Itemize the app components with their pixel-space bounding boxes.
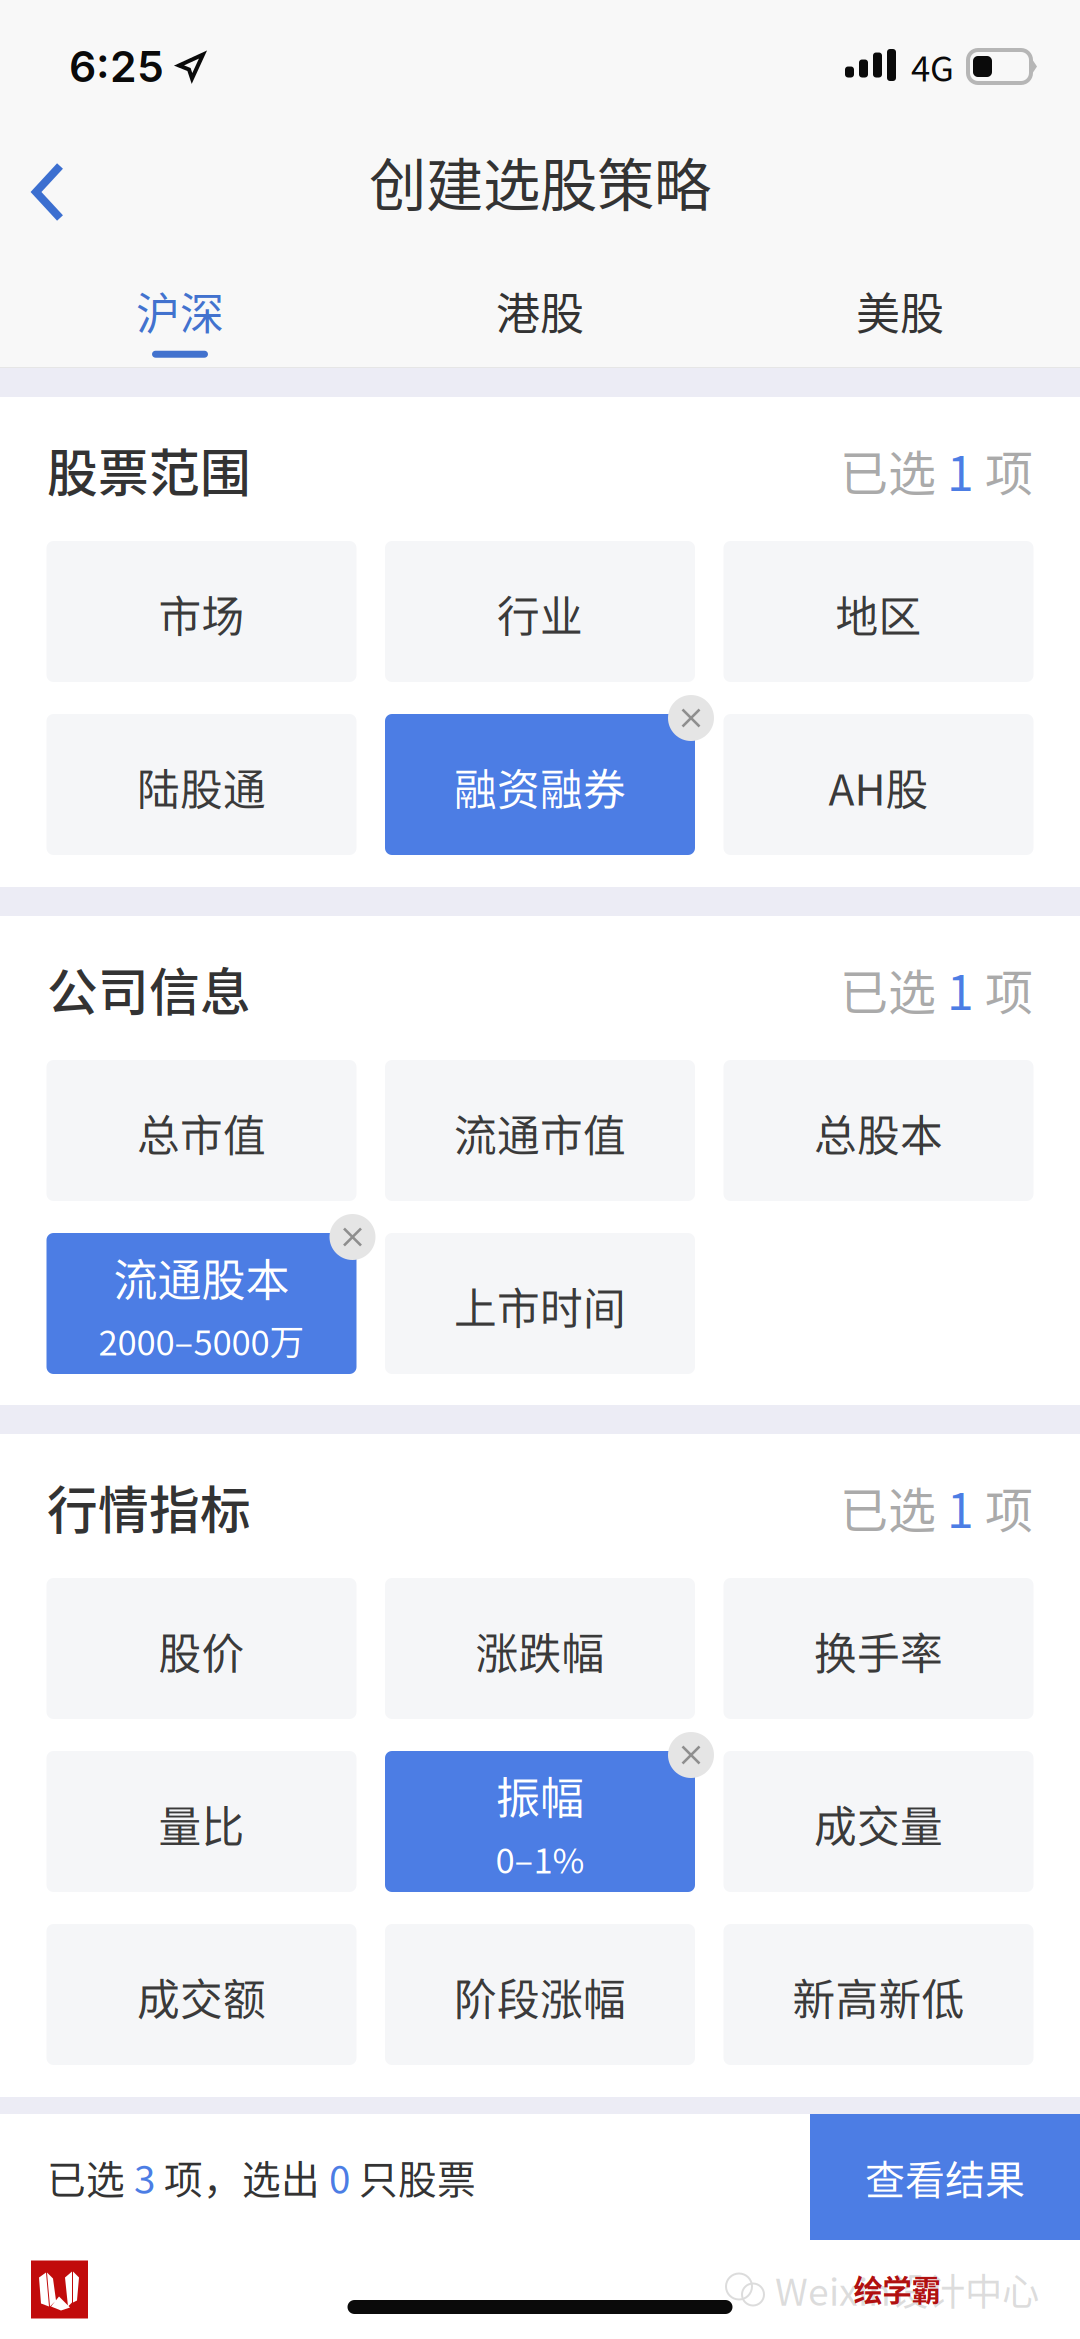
- staticText: 流通股本: [113, 1245, 289, 1309]
- staticText: 融资融券: [454, 756, 626, 818]
- staticText: 港股: [496, 279, 584, 343]
- staticText: 1: [947, 1472, 974, 1542]
- button[interactable]: 总股本: [723, 1060, 1033, 1201]
- button[interactable]: 融资融券: [385, 714, 695, 855]
- button[interactable]: 新高新低: [723, 1924, 1033, 2065]
- staticText: 换手率: [814, 1620, 943, 1682]
- button[interactable]: 上市时间: [385, 1233, 695, 1374]
- button[interactable]: 涨跌幅: [385, 1578, 695, 1719]
- staticText: 股票范围: [47, 433, 251, 507]
- staticText: 行业: [497, 583, 583, 645]
- button[interactable]: AH股: [723, 714, 1033, 855]
- staticText: 已选: [47, 2149, 134, 2205]
- staticText: 成交量: [814, 1793, 943, 1855]
- staticText: 项: [974, 954, 1033, 1024]
- staticText: 4G: [911, 41, 954, 92]
- staticText: 项: [974, 1472, 1033, 1542]
- button[interactable]: Remove 融资融券: [668, 695, 714, 741]
- staticText: 1: [947, 954, 974, 1024]
- staticText: 0: [329, 2149, 350, 2205]
- staticText: 成交额: [137, 1966, 266, 2028]
- staticText: 已选: [840, 435, 947, 505]
- button[interactable]: 陆股通: [46, 714, 356, 855]
- button[interactable]: 流通股本: [46, 1233, 356, 1374]
- staticText: 3: [134, 2149, 155, 2205]
- button[interactable]: 沪深: [0, 248, 360, 368]
- staticText: 已选: [840, 1472, 947, 1542]
- staticText: 量比: [158, 1793, 244, 1855]
- button[interactable]: 量比: [46, 1751, 356, 1892]
- staticText: 创建选股策略: [369, 139, 711, 222]
- button[interactable]: 流通市值: [385, 1060, 695, 1201]
- staticText: 总市值: [137, 1102, 266, 1164]
- staticText: 股价: [158, 1620, 244, 1682]
- staticText: 1: [947, 435, 974, 505]
- button[interactable]: 阶段涨幅: [385, 1924, 695, 2065]
- button[interactable]: Back: [0, 120, 96, 248]
- button[interactable]: 美股: [720, 248, 1080, 368]
- button[interactable]: 成交额: [46, 1924, 356, 2065]
- staticText: 公司信息: [47, 952, 251, 1026]
- button[interactable]: 成交量: [723, 1751, 1033, 1892]
- button[interactable]: 总市值: [46, 1060, 356, 1201]
- staticText: AH股: [828, 756, 928, 818]
- button[interactable]: 查看结果: [810, 2114, 1080, 2240]
- staticText: 涨跌幅: [475, 1620, 604, 1682]
- button[interactable]: 振幅: [385, 1751, 695, 1892]
- staticText: 项: [974, 435, 1033, 505]
- button[interactable]: 换手率: [723, 1578, 1033, 1719]
- staticText: 地区: [835, 583, 921, 645]
- staticText: 上市时间: [454, 1275, 626, 1337]
- staticText: 陆股通: [137, 756, 266, 818]
- staticText: 2000–5000万: [98, 1315, 304, 1365]
- staticText: 已选: [840, 954, 947, 1024]
- staticText: 项，选出: [155, 2149, 329, 2205]
- staticText: 绘学霸: [853, 2267, 940, 2310]
- staticText: 行情指标: [47, 1470, 251, 1544]
- button[interactable]: 地区: [723, 541, 1033, 682]
- button[interactable]: 行业: [385, 541, 695, 682]
- button[interactable]: Remove 流通股本: [329, 1214, 375, 1260]
- staticText: 新高新低: [792, 1966, 964, 2028]
- staticText: 只股票: [350, 2149, 476, 2205]
- staticText: 流通市值: [454, 1102, 626, 1164]
- staticText: 总股本: [814, 1102, 943, 1164]
- staticText: Weixin设计中心: [775, 2262, 1039, 2317]
- button[interactable]: 股价: [46, 1578, 356, 1719]
- button[interactable]: 港股: [360, 248, 720, 368]
- staticText: 振幅: [496, 1763, 584, 1827]
- staticText: 查看结果: [865, 2148, 1025, 2206]
- button[interactable]: Remove 振幅: [668, 1732, 714, 1778]
- staticText: 阶段涨幅: [454, 1966, 626, 2028]
- staticText: 沪深: [136, 279, 224, 343]
- staticText: 0–1%: [495, 1833, 584, 1883]
- staticText: 6:25: [69, 41, 164, 92]
- staticText: 美股: [856, 279, 944, 343]
- button[interactable]: 市场: [46, 541, 356, 682]
- staticText: 市场: [158, 583, 244, 645]
